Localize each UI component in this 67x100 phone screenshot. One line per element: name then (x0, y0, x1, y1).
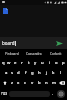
button[interactable]: o (53, 58, 60, 68)
staticText: l (60, 70, 62, 76)
button[interactable]: Cassandra (23, 49, 45, 58)
staticText: v (31, 80, 34, 86)
button[interactable]: ?123 (0, 88, 9, 100)
staticText: g (31, 70, 34, 76)
staticText: o (55, 60, 58, 66)
staticText: y (34, 60, 37, 66)
staticText: ?123 (1, 92, 8, 96)
staticText: z (11, 80, 13, 86)
button[interactable]: u (39, 58, 46, 68)
staticText: i (49, 60, 51, 66)
button[interactable]: m (50, 78, 57, 88)
button[interactable]: Corbett (45, 49, 67, 58)
button[interactable]: Send (54, 38, 65, 49)
staticText: . (52, 91, 54, 97)
staticText: n (45, 80, 48, 86)
staticText: x (17, 80, 20, 86)
staticText: Pinboard (5, 52, 19, 56)
staticText: Cassandra (26, 52, 42, 56)
button[interactable]: r (18, 58, 25, 68)
button[interactable]: j (43, 68, 50, 78)
staticText: p (62, 60, 65, 66)
button[interactable]: Enter (55, 88, 67, 100)
button[interactable]: h (36, 68, 43, 78)
button[interactable]: q (0, 58, 6, 68)
button[interactable]: y (32, 58, 39, 68)
staticText: h (38, 70, 41, 76)
staticText: c (24, 80, 27, 86)
staticText: d (17, 70, 20, 76)
staticText: m (52, 80, 56, 86)
staticText: Corbett (50, 52, 62, 56)
button[interactable]: Shift (0, 78, 9, 88)
button[interactable]: t (25, 58, 32, 68)
button[interactable]: n (43, 78, 50, 88)
button[interactable]: f (22, 68, 29, 78)
button[interactable]: w (6, 58, 12, 68)
button[interactable]: p (60, 58, 67, 68)
button[interactable]: b (36, 78, 43, 88)
staticText: e (14, 60, 17, 66)
button[interactable]: e (12, 58, 18, 68)
staticText: k (52, 70, 55, 76)
staticText: r (21, 60, 23, 66)
staticText: f (25, 70, 27, 76)
staticText: s (11, 70, 14, 76)
button[interactable]: . (50, 88, 55, 100)
staticText: t (28, 60, 30, 66)
staticText: board (2, 40, 15, 46)
button[interactable]: l (57, 68, 64, 78)
staticText: q (2, 60, 5, 66)
button[interactable]: Space (9, 91, 50, 97)
staticText: j (46, 70, 48, 76)
button[interactable]: i (46, 58, 53, 68)
button[interactable]: d (15, 68, 22, 78)
button[interactable]: x (15, 78, 22, 88)
staticText: w (7, 60, 11, 66)
button[interactable]: c (22, 78, 29, 88)
button[interactable]: a (3, 68, 9, 78)
button[interactable]: s (9, 68, 15, 78)
button[interactable]: z (9, 78, 15, 88)
staticText: a (5, 70, 8, 76)
button[interactable]: Attached file (3, 8, 8, 14)
button[interactable]: Backspace (57, 78, 67, 88)
staticText: b (38, 80, 41, 86)
button[interactable]: Pinboard (0, 49, 23, 58)
staticText: u (41, 60, 44, 66)
button[interactable]: k (50, 68, 57, 78)
button[interactable]: g (29, 68, 36, 78)
button[interactable]: v (29, 78, 36, 88)
